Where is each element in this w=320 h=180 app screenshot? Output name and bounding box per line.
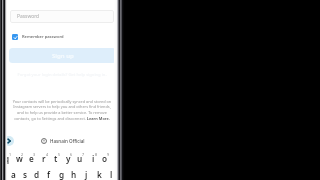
button[interactable]: f bbox=[43, 167, 55, 180]
button[interactable]: Next suggestion bbox=[4, 136, 14, 146]
button[interactable]: l bbox=[105, 167, 117, 180]
button[interactable]: a bbox=[7, 167, 19, 180]
staticText: a bbox=[11, 169, 16, 180]
button[interactable]: r bbox=[38, 151, 50, 166]
button[interactable]: i bbox=[87, 151, 99, 166]
staticText: 3 bbox=[33, 152, 36, 157]
staticText: 8 bbox=[95, 152, 98, 157]
staticText: o bbox=[102, 153, 108, 164]
staticText: 4 bbox=[46, 152, 49, 157]
staticText: Your contacts will be periodically synce… bbox=[12, 99, 112, 121]
button[interactable]: Expand suggestions bbox=[112, 136, 121, 145]
staticText: 6 bbox=[70, 152, 73, 157]
button[interactable]: g bbox=[56, 167, 68, 180]
button[interactable]: d bbox=[31, 167, 43, 180]
button[interactable]: j bbox=[80, 167, 92, 180]
staticText: h bbox=[71, 169, 77, 180]
staticText: Sign up bbox=[52, 52, 74, 60]
staticText: 9 bbox=[107, 152, 110, 157]
button[interactable]: Password bbox=[10, 10, 114, 23]
staticText: Remember password bbox=[22, 34, 64, 40]
staticText: e bbox=[29, 153, 34, 164]
staticText: 2 bbox=[21, 152, 24, 157]
staticText: s bbox=[23, 169, 28, 180]
staticText: f bbox=[47, 169, 51, 180]
staticText: i bbox=[92, 153, 95, 164]
staticText: 7 bbox=[82, 152, 85, 157]
button[interactable]: k bbox=[93, 167, 105, 180]
button[interactable]: t bbox=[50, 151, 62, 166]
button[interactable]: e bbox=[25, 151, 37, 166]
button[interactable]: q bbox=[1, 151, 13, 166]
staticText: r bbox=[42, 153, 46, 164]
staticText: q bbox=[4, 153, 10, 164]
staticText: 5 bbox=[58, 152, 61, 157]
staticText: 0 bbox=[119, 152, 122, 157]
staticText: y bbox=[66, 153, 71, 164]
button[interactable]: p bbox=[111, 151, 123, 166]
button[interactable]: Hasnain Official bbox=[41, 136, 85, 146]
button[interactable]: y bbox=[62, 151, 74, 166]
staticText: d bbox=[34, 169, 40, 180]
staticText: w bbox=[16, 153, 23, 164]
staticText: Forgot your login details? Get help sign… bbox=[6, 72, 118, 78]
button[interactable]: w bbox=[13, 151, 25, 166]
staticText: Password bbox=[17, 13, 40, 20]
button[interactable]: Sign up bbox=[9, 48, 116, 63]
staticText: t bbox=[54, 153, 58, 164]
staticText: l bbox=[110, 169, 113, 180]
staticText: j bbox=[85, 169, 88, 180]
button[interactable]: u bbox=[74, 151, 86, 166]
button[interactable]: h bbox=[68, 167, 80, 180]
staticText: Hasnain Official bbox=[50, 138, 85, 144]
staticText: k bbox=[97, 169, 102, 180]
staticText: 1 bbox=[9, 152, 12, 157]
button[interactable]: s bbox=[19, 167, 31, 180]
staticText: p bbox=[114, 153, 120, 164]
staticText: g bbox=[59, 169, 65, 180]
button[interactable]: Remember password bbox=[12, 31, 64, 43]
staticText: u bbox=[77, 153, 83, 164]
button[interactable]: o bbox=[99, 151, 111, 166]
